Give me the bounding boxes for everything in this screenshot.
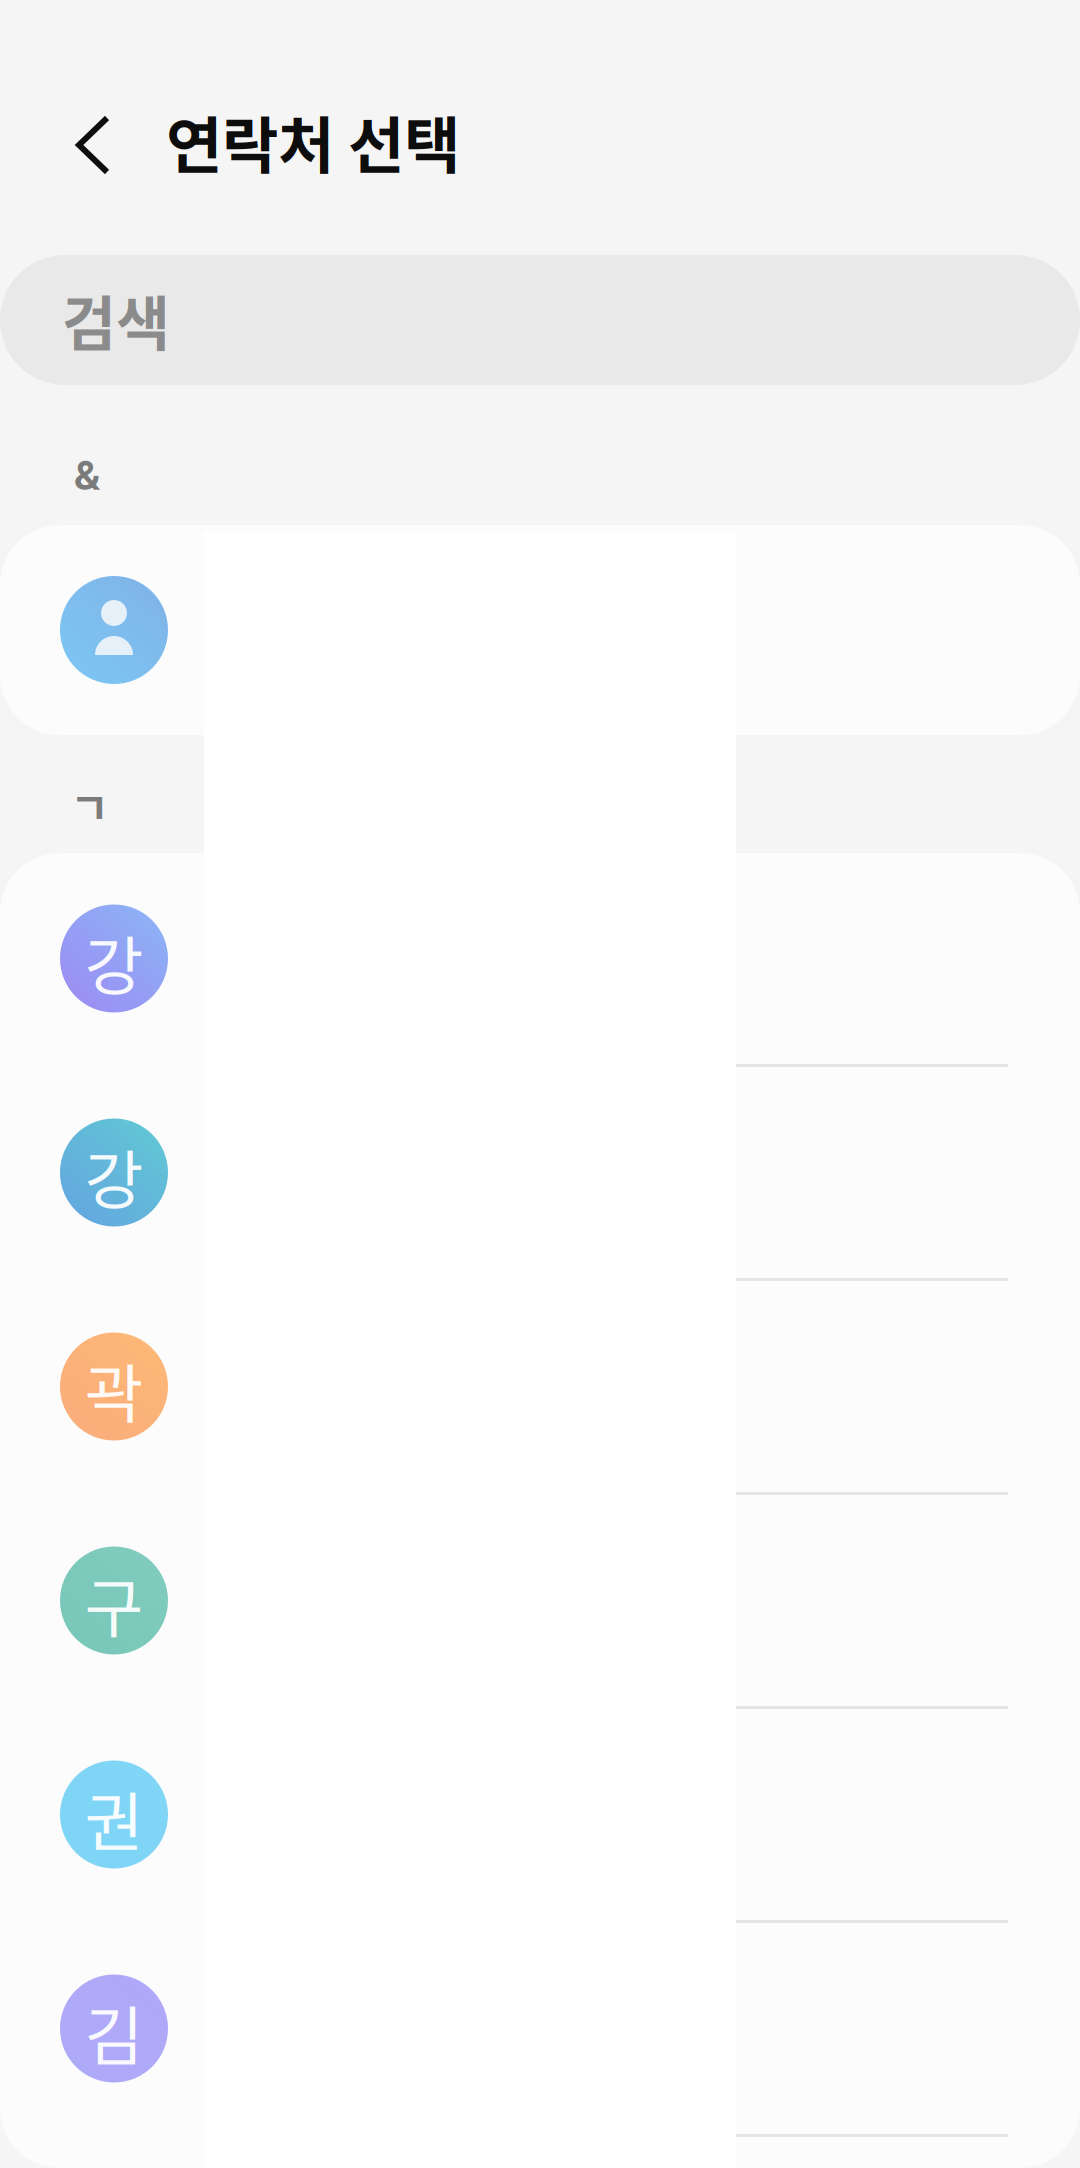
staticText: & xyxy=(74,451,100,499)
button[interactable]: 연락처 선택 xyxy=(166,0,460,255)
staticText: 김 xyxy=(84,1985,143,2078)
button[interactable]: 김 xyxy=(0,1923,1080,2137)
staticText: 연락처 선택 xyxy=(166,97,460,186)
staticText: 구 xyxy=(84,1557,143,1650)
staticText: 곽 xyxy=(84,1343,143,1436)
button[interactable]: Back xyxy=(0,0,166,255)
staticText: ㄱ xyxy=(70,775,109,837)
staticText: 검색 xyxy=(62,277,170,362)
staticText: 권 xyxy=(84,1771,143,1864)
staticText: 강 xyxy=(84,1129,143,1222)
button[interactable]: 권 xyxy=(0,1709,1080,1923)
button[interactable]: 구 xyxy=(0,1495,1080,1709)
staticText: 강 xyxy=(84,915,143,1008)
button[interactable] xyxy=(0,525,1080,735)
button[interactable]: 검색 xyxy=(0,255,1080,385)
button[interactable]: 강 xyxy=(0,853,1080,1067)
button[interactable]: 곽 xyxy=(0,1281,1080,1495)
button[interactable]: 강 xyxy=(0,1067,1080,1281)
